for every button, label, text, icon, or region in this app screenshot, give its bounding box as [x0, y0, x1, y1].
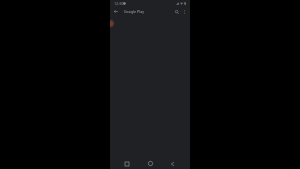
button[interactable]: Search [172, 7, 182, 17]
staticText: Google Play [124, 9, 145, 14]
button[interactable]: Back [110, 6, 121, 17]
button[interactable]: Recent apps [122, 159, 132, 169]
staticText: 12:30 [114, 1, 124, 6]
button[interactable]: Home [145, 158, 155, 168]
button[interactable]: Google Play [124, 9, 145, 14]
button[interactable]: More options [180, 7, 189, 16]
button[interactable]: Back [167, 159, 177, 169]
